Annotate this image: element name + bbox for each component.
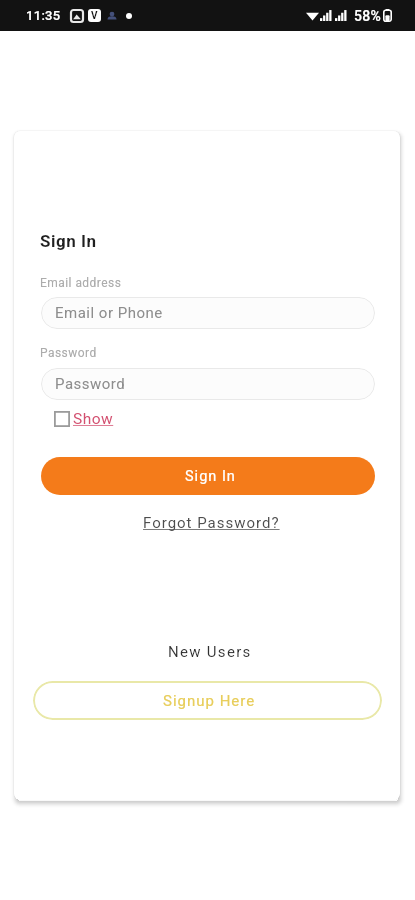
button[interactable]: Forgot Password? (133, 509, 290, 537)
button[interactable]: Show password (54, 409, 114, 429)
other: Wi-Fi (306, 10, 319, 21)
staticText: 58% (354, 8, 382, 24)
staticText: New Users (168, 643, 252, 661)
staticText: Email or Phone (55, 304, 163, 322)
staticText: Forgot Password? (143, 514, 280, 532)
staticText: Sign In (40, 231, 97, 251)
other: Signal (320, 10, 332, 21)
button[interactable]: Email or Phone (41, 297, 375, 329)
other: Signal (335, 10, 347, 21)
staticText: Sign In (185, 468, 236, 485)
button[interactable]: Signup Here (33, 681, 382, 720)
other: Battery 58 percent (383, 9, 392, 22)
other: Contact (106, 10, 118, 22)
staticText: 11:35 (26, 8, 61, 23)
staticText: Show (73, 410, 114, 428)
staticText: V (91, 10, 98, 22)
staticText: Email address (40, 276, 122, 290)
staticText: Signup Here (163, 692, 256, 710)
staticText: Password (40, 346, 97, 360)
button[interactable]: Sign In (41, 457, 375, 495)
other: Screenshot (71, 10, 83, 22)
staticText: Password (55, 375, 126, 393)
button[interactable]: Password (41, 368, 375, 400)
